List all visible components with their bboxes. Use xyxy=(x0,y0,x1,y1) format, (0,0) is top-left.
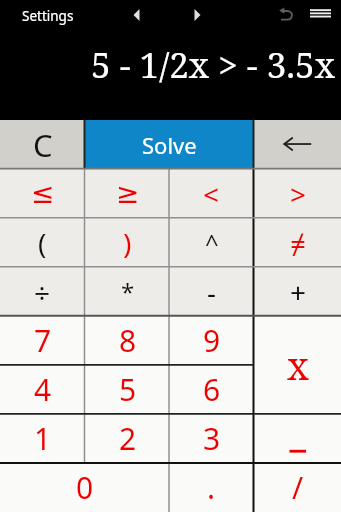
button[interactable]: * xyxy=(85,267,170,316)
button[interactable]: 6 xyxy=(169,365,254,414)
staticText: ≤ xyxy=(31,177,55,210)
staticText: 4 xyxy=(34,369,52,410)
button[interactable]: 1 xyxy=(0,414,85,463)
staticText: Settings xyxy=(22,7,74,25)
button[interactable]: ( xyxy=(0,218,85,267)
button[interactable]: x xyxy=(254,316,341,414)
staticText: ) xyxy=(123,224,132,262)
button[interactable]: ) xyxy=(85,218,170,267)
button[interactable]: . xyxy=(169,463,254,512)
button[interactable]: ÷ xyxy=(0,267,85,316)
staticText: < xyxy=(203,175,220,213)
button[interactable]: > xyxy=(254,169,341,218)
button[interactable]: 9 xyxy=(169,316,254,365)
staticText: ^ xyxy=(205,226,219,259)
button[interactable]: - xyxy=(169,267,254,316)
staticText: . xyxy=(207,467,216,508)
staticText: * xyxy=(121,275,135,308)
staticText: C xyxy=(33,124,53,166)
staticText: 5 xyxy=(119,369,137,410)
staticText: 2 xyxy=(119,418,137,459)
button[interactable]: ≥ xyxy=(85,169,170,218)
staticText: 3 xyxy=(203,418,221,459)
staticText: ≥ xyxy=(116,177,140,210)
staticText: / xyxy=(292,467,304,508)
button[interactable]: 7 xyxy=(0,316,85,365)
button[interactable]: / xyxy=(254,463,341,512)
staticText: ÷ xyxy=(34,273,51,311)
button[interactable]: + xyxy=(254,267,341,316)
staticText: 5 - 1/2x > - 3.5x xyxy=(91,41,335,89)
button[interactable]: ≠ xyxy=(254,218,341,267)
staticText: ≠ xyxy=(290,224,307,262)
button[interactable]: 8 xyxy=(85,316,170,365)
button[interactable]: C xyxy=(0,120,85,169)
staticText: 8 xyxy=(119,320,137,361)
button[interactable]: ^ xyxy=(169,218,254,267)
staticText: 1 xyxy=(34,418,52,459)
button[interactable]: 5 xyxy=(85,365,170,414)
staticText: > xyxy=(290,175,307,213)
staticText: + xyxy=(290,273,307,311)
button[interactable] xyxy=(254,414,341,463)
staticText: 9 xyxy=(203,320,221,361)
button[interactable] xyxy=(254,120,341,169)
button[interactable]: 4 xyxy=(0,365,85,414)
button[interactable]: < xyxy=(169,169,254,218)
button[interactable]: ≤ xyxy=(0,169,85,218)
staticText: 0 xyxy=(76,467,94,508)
staticText: ( xyxy=(38,224,47,262)
button[interactable]: 0 xyxy=(0,463,169,512)
staticText: 7 xyxy=(34,320,52,361)
staticText: 6 xyxy=(203,369,221,410)
button[interactable]: Solve xyxy=(85,120,254,169)
button[interactable]: 2 xyxy=(85,414,170,463)
button[interactable]: 3 xyxy=(169,414,254,463)
staticText: Solve xyxy=(142,130,197,160)
staticText: - xyxy=(207,273,217,311)
staticText: x xyxy=(287,339,309,391)
